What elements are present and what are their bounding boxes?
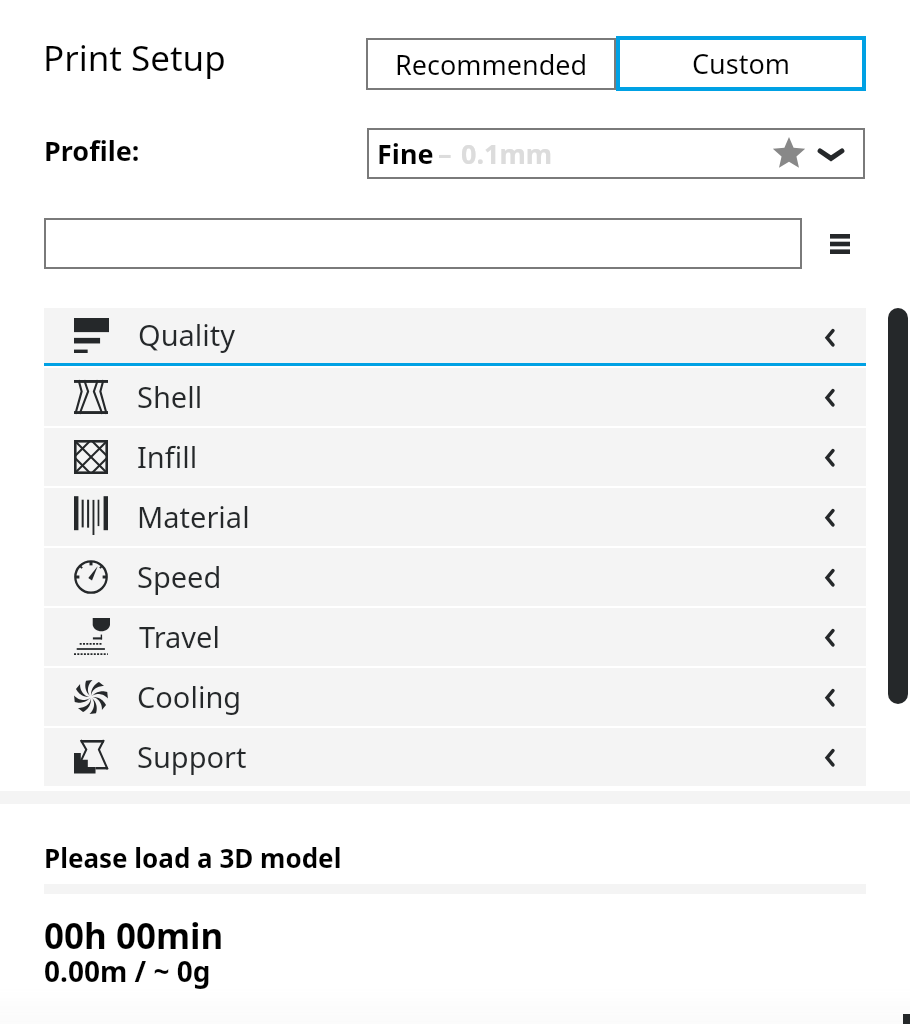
button[interactable]: Recommended [366, 38, 616, 90]
staticText: Shell [137, 377, 203, 416]
staticText: 0.1mm [461, 135, 553, 172]
button[interactable] [44, 218, 802, 269]
button[interactable]: Infill [44, 428, 866, 486]
staticText: Custom [692, 45, 791, 82]
staticText: Recommended [395, 46, 588, 83]
button[interactable]: Material [44, 488, 866, 546]
staticText: Profile: [44, 132, 140, 169]
button[interactable]: Speed [44, 548, 866, 606]
button[interactable]: Setting visibility [816, 220, 864, 268]
staticText: – [438, 135, 452, 172]
other: Expand profile list [814, 137, 848, 171]
staticText: Infill [137, 437, 198, 476]
button[interactable]: Fine [367, 128, 865, 179]
staticText: Fine [377, 135, 434, 172]
button[interactable]: Quality [44, 308, 866, 363]
staticText: Travel [139, 617, 220, 656]
staticText: 0.00m / ~ 0g [44, 952, 211, 990]
other: Favourite profile [772, 137, 806, 171]
button[interactable]: Scroll [888, 308, 908, 704]
button[interactable]: Custom [616, 36, 866, 91]
staticText: Cooling [137, 677, 242, 716]
button[interactable]: Travel [44, 608, 866, 666]
staticText: Please load a 3D model [44, 840, 342, 875]
staticText: Quality [138, 315, 236, 354]
staticText: Print Setup [43, 34, 226, 82]
staticText: Material [137, 497, 250, 536]
button[interactable]: Support [44, 728, 866, 786]
staticText: Speed [137, 557, 222, 596]
staticText: 00h 00min [44, 912, 224, 960]
button[interactable]: Cooling [44, 668, 866, 726]
button[interactable]: Shell [44, 368, 866, 426]
staticText: Support [137, 737, 247, 776]
